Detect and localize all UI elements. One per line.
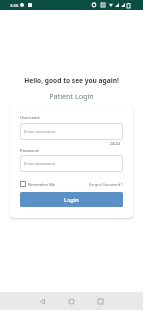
staticText: Hello, good to see you again! [0, 76, 143, 85]
staticText: Enter username [24, 129, 56, 135]
button[interactable]: Back [33, 292, 51, 310]
button[interactable]: Recents [91, 292, 109, 310]
staticText: Login [64, 196, 79, 203]
staticText: Username [20, 115, 40, 121]
staticText: Password [20, 148, 39, 154]
staticText: Enter password [24, 161, 55, 167]
staticText: Remember Me [28, 182, 56, 187]
staticText: Patient Login [0, 91, 143, 101]
button[interactable]: Enter password [20, 155, 123, 172]
button[interactable]: Remember Me [20, 181, 56, 187]
button[interactable]: Enter username [20, 123, 123, 140]
button[interactable]: Home [62, 292, 80, 310]
staticText: 24/24 [20, 141, 120, 146]
staticText: 3:36 [10, 3, 19, 9]
button[interactable]: Login [20, 192, 123, 207]
button[interactable]: Forgot Password ? [20, 182, 123, 187]
